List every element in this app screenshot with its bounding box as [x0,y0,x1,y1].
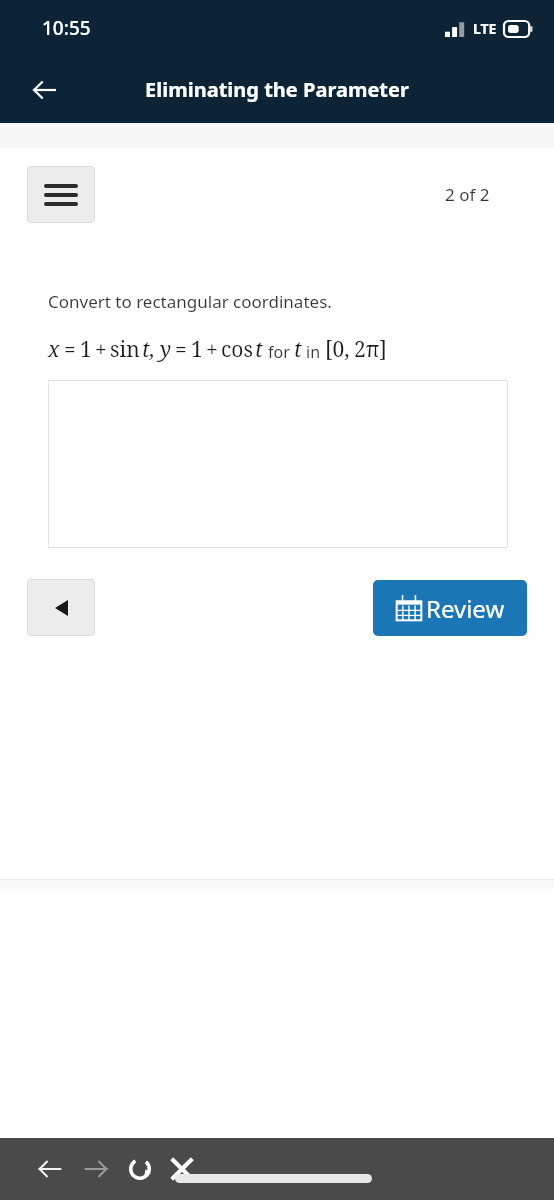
staticText: cos [221,335,253,364]
staticText: = [64,335,76,364]
staticText: + [95,335,107,364]
staticText: LTE [473,19,497,38]
staticText: t [294,335,302,364]
staticText: = [175,335,187,364]
staticText: 2 of 2 [445,183,490,206]
staticText: t [255,335,263,364]
button[interactable]: Back [30,1149,70,1189]
staticText: 2π] [354,335,387,364]
staticText: in [306,341,321,363]
staticText: Eliminating the Parameter [145,76,409,103]
staticText: 10:55 [42,15,91,41]
staticText: [0, [325,335,350,364]
staticText: y [160,335,172,364]
button[interactable]: Previous [27,579,95,636]
staticText: for [268,341,290,363]
staticText: 1 [80,335,92,364]
staticText: + [206,335,218,364]
staticText: t, [142,335,155,364]
staticText: Convert to rectangular coordinates. [48,290,332,313]
staticText: 1 [191,335,203,364]
staticText: x [48,335,60,364]
staticText: Review [426,592,505,625]
staticText: sin [110,335,140,364]
button[interactable]: Back [18,64,70,116]
button[interactable]: Reload [120,1149,160,1189]
button[interactable]: Menu [27,166,95,223]
button[interactable]: Review [373,580,527,636]
button[interactable]: Stop [162,1149,202,1189]
button[interactable]: Forward [76,1149,116,1189]
button[interactable] [48,380,508,548]
